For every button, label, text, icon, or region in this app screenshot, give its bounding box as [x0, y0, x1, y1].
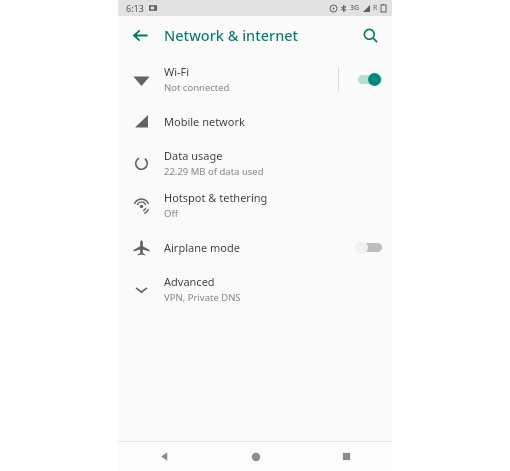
staticText: Network & internet — [164, 25, 299, 45]
button[interactable]: Data usage — [118, 142, 392, 184]
button[interactable]: Wi-Fi toggle, on — [355, 69, 385, 89]
button[interactable]: Recent apps — [301, 442, 392, 471]
button[interactable]: Hotspot & tethering — [118, 184, 392, 226]
button[interactable]: Wi-Fi — [118, 58, 392, 100]
button[interactable]: Advanced — [118, 268, 392, 310]
staticText: Off — [164, 207, 178, 220]
button[interactable]: Home — [210, 442, 301, 471]
staticText: Data usage — [164, 148, 223, 163]
button[interactable]: Airplane mode toggle, off — [355, 237, 385, 257]
button[interactable]: Back — [124, 19, 156, 51]
button[interactable]: Airplane mode — [118, 226, 392, 268]
staticText: R — [373, 3, 378, 13]
button[interactable]: Search — [354, 19, 386, 51]
staticText: 6:13 — [126, 2, 144, 14]
staticText: Hotspot & tethering — [164, 190, 268, 205]
staticText: Airplane mode — [164, 240, 240, 255]
staticText: VPN, Private DNS — [164, 291, 241, 304]
staticText: 3G — [350, 3, 360, 13]
staticText: Mobile network — [164, 114, 245, 129]
button[interactable]: Mobile network — [118, 100, 392, 142]
staticText: Not connected — [164, 81, 230, 94]
button[interactable]: Back — [118, 442, 210, 471]
staticText: Wi-Fi — [164, 64, 190, 79]
staticText: 22.29 MB of data used — [164, 165, 264, 178]
staticText: Advanced — [164, 274, 215, 289]
